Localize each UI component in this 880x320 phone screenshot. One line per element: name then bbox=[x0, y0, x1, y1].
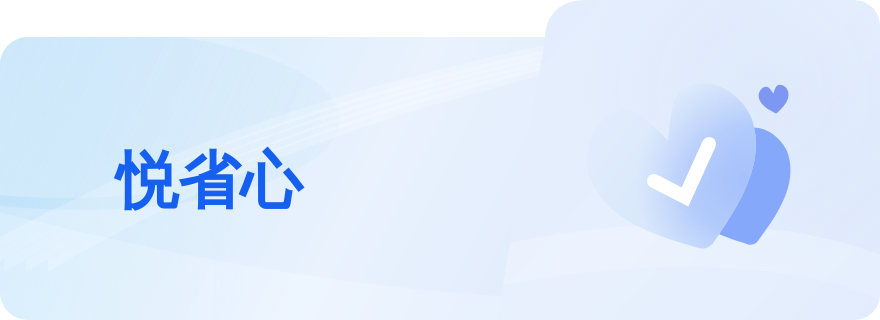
button[interactable]: 悦省心 bbox=[0, 0, 880, 320]
staticText: 悦省心 bbox=[116, 142, 302, 220]
